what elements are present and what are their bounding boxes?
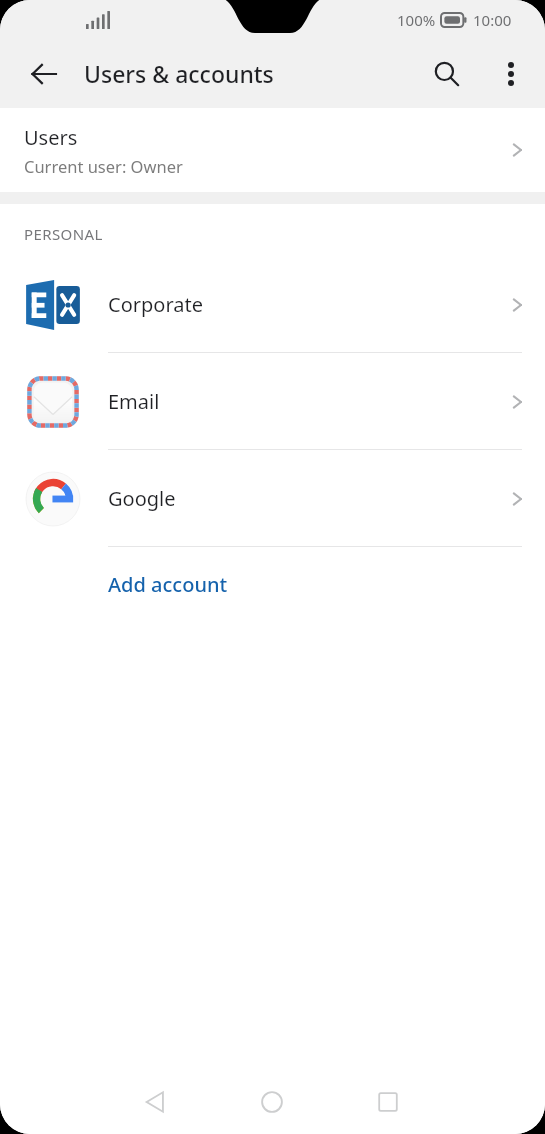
button[interactable]: Home [244, 1074, 300, 1130]
button[interactable]: Search [421, 48, 473, 100]
button[interactable]: Back [127, 1074, 183, 1130]
button[interactable]: More options [487, 50, 535, 98]
staticText: Google [108, 485, 176, 512]
button[interactable]: Corporate [0, 256, 545, 353]
button[interactable]: Recent apps [360, 1074, 416, 1130]
staticText: Add account [108, 571, 228, 598]
button[interactable]: Users [0, 108, 545, 192]
staticText: Email [108, 388, 160, 415]
button[interactable]: Google [0, 450, 545, 547]
staticText: 10:00 [473, 10, 512, 30]
button[interactable]: Add account [0, 547, 545, 621]
staticText: Current user: Owner [24, 155, 183, 177]
button[interactable]: Email [0, 353, 545, 450]
staticText: Corporate [108, 291, 203, 318]
staticText: PERSONAL [24, 224, 103, 244]
button[interactable]: Back [18, 48, 70, 100]
staticText: Users [24, 124, 78, 151]
staticText: Users & accounts [84, 58, 274, 89]
staticText: 100% [397, 10, 436, 30]
